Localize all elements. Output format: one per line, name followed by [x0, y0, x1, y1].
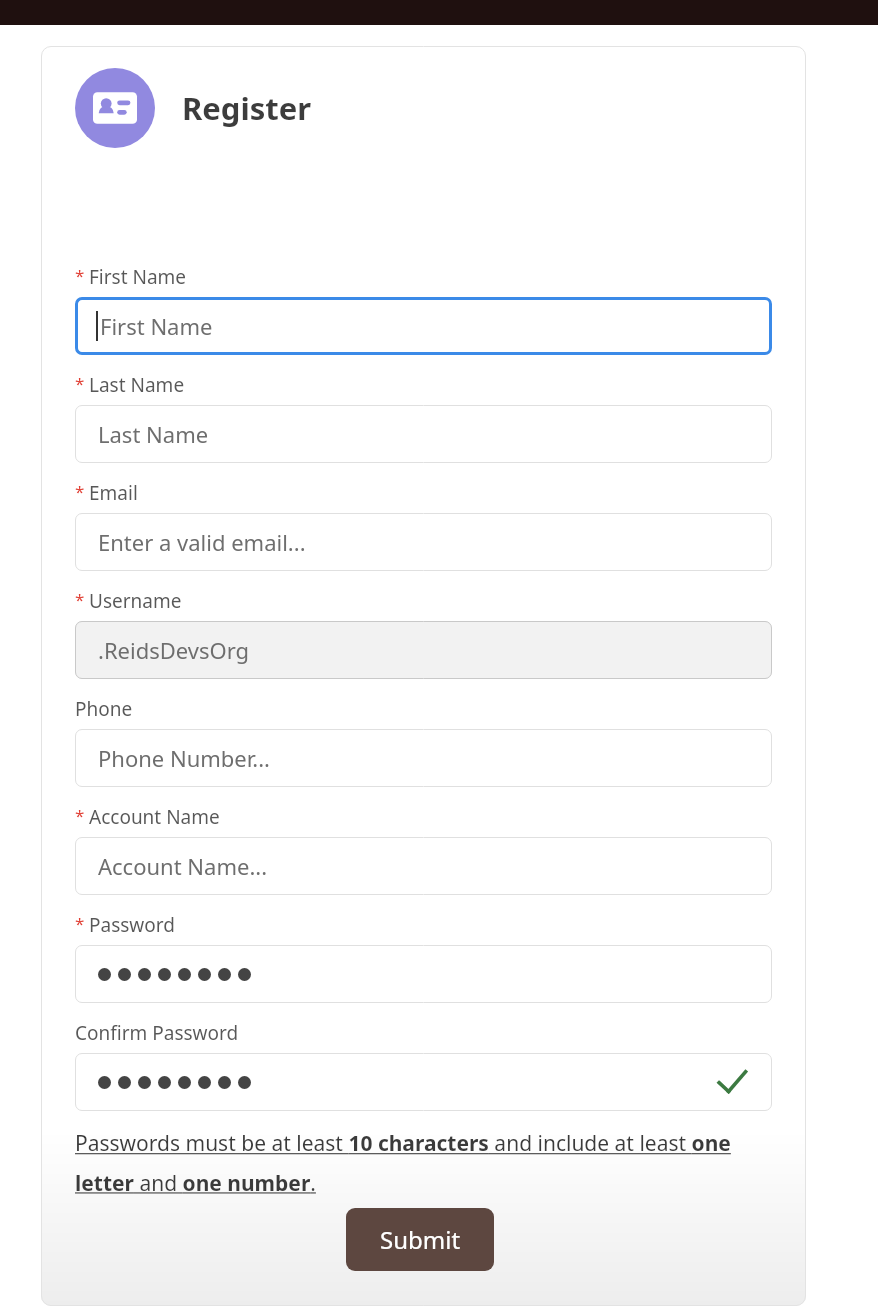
staticText: Email	[89, 480, 138, 506]
button[interactable]: .ReidsDevsOrg	[75, 621, 772, 679]
staticText: Phone Number...	[98, 743, 271, 773]
staticText: First Name	[89, 264, 187, 290]
staticText: Password	[89, 912, 175, 938]
staticText: .ReidsDevsOrg	[98, 635, 250, 665]
staticText: Submit	[380, 1223, 461, 1256]
button[interactable]	[75, 1053, 772, 1111]
staticText: Account Name...	[98, 851, 268, 881]
staticText: First Name	[100, 311, 213, 341]
staticText: *	[75, 372, 85, 395]
staticText: *	[75, 912, 85, 935]
staticText: Phone	[75, 696, 133, 722]
staticText: Account Name	[89, 804, 220, 830]
staticText: Enter a valid email...	[98, 527, 306, 557]
button[interactable]: Submit	[346, 1208, 494, 1271]
staticText: Confirm Password	[75, 1020, 239, 1046]
button[interactable]: Enter a valid email...	[75, 513, 772, 571]
button[interactable]: Last Name	[75, 405, 772, 463]
button[interactable]: Phone Number...	[75, 729, 772, 787]
button[interactable]: Register account	[75, 68, 155, 148]
staticText: *	[75, 804, 85, 827]
staticText: *	[75, 264, 85, 287]
staticText: Register	[182, 87, 312, 129]
staticText: Username	[89, 588, 182, 614]
staticText: *	[75, 588, 85, 611]
staticText: *	[75, 480, 85, 503]
staticText: Last Name	[89, 372, 185, 398]
button[interactable]: Account Name...	[75, 837, 772, 895]
button[interactable]: First Name	[75, 297, 772, 355]
button[interactable]	[75, 945, 772, 1003]
staticText: Last Name	[98, 419, 209, 449]
staticText: Passwords must be at least 10 characters…	[75, 1129, 772, 1197]
